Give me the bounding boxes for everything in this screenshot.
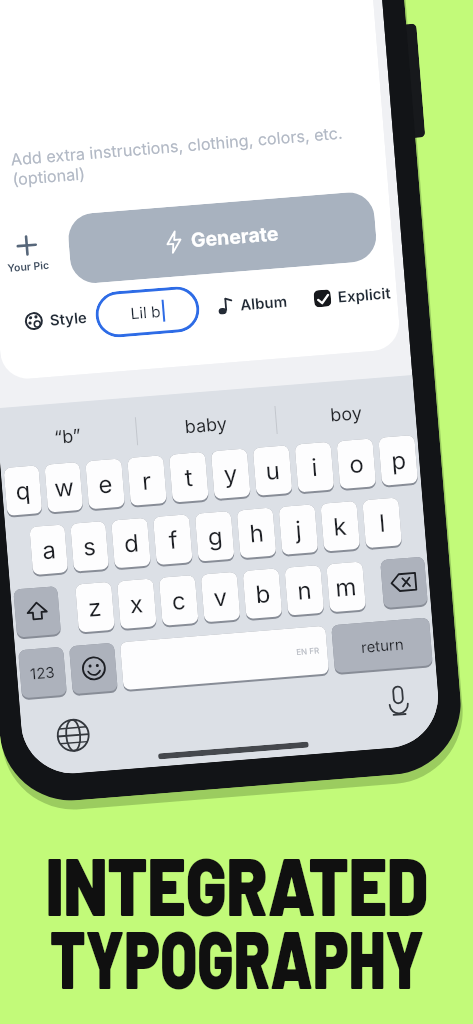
staticText: j [294,515,303,545]
button[interactable]: 123 [18,647,67,698]
button[interactable]: boy [276,398,416,431]
staticText: w [53,472,75,503]
button[interactable]: j [279,504,318,555]
button[interactable] [385,684,412,718]
staticText: a [41,535,57,565]
button[interactable]: s [70,521,109,572]
button[interactable] [69,643,118,694]
button[interactable]: baby [136,409,276,442]
button[interactable]: Lil b [94,285,201,339]
button[interactable]: i [295,442,334,492]
button[interactable]: q [3,465,42,516]
button[interactable]: k [320,501,360,551]
staticText: o [348,449,365,479]
staticText: h [248,518,266,548]
staticText: i [310,453,319,482]
button[interactable]: z [75,582,115,632]
button[interactable]: n [284,565,324,616]
button[interactable]: Explicit [313,283,391,307]
staticText: m [334,572,358,603]
button[interactable]: e [85,458,125,509]
button[interactable]: w [44,462,83,513]
staticText: (optional) [12,163,86,189]
staticText: baby [184,413,229,438]
staticText: TYPOGRAPHY [7,908,467,1024]
button[interactable]: g [195,511,234,562]
staticText: “b” [53,425,82,449]
staticText: Lil b [130,302,162,323]
button[interactable] [380,557,428,608]
staticText: f [168,525,179,555]
button[interactable]: y [211,448,251,499]
button[interactable]: c [159,575,198,626]
button[interactable]: return [331,617,433,673]
button[interactable]: l [362,497,402,548]
staticText: Album [239,292,288,313]
staticText: u [264,456,282,486]
button[interactable]: o [336,438,376,489]
button[interactable]: a [29,524,68,575]
button[interactable]: Album [217,292,288,315]
staticText: s [82,532,97,562]
staticText: y [223,459,239,489]
staticText: Explicit [337,283,391,306]
button[interactable]: Your Pic [0,232,64,276]
staticText: INTEGRATED [0,835,473,975]
button[interactable]: Generate [66,190,378,285]
button[interactable]: h [237,508,276,558]
staticText: g [207,522,224,552]
button[interactable]: v [201,572,240,622]
staticText: x [129,589,145,619]
button[interactable]: b [243,568,282,619]
button[interactable]: d [111,518,151,568]
staticText: return [360,634,405,656]
staticText: e [97,469,113,499]
staticText: c [171,586,187,616]
staticText: d [123,528,140,558]
button[interactable]: EN FR [120,626,329,690]
button[interactable]: x [117,578,157,629]
staticText: z [87,593,103,623]
button[interactable]: f [153,514,193,565]
button[interactable]: u [253,445,292,496]
staticText: v [212,582,229,612]
staticText: t [184,463,194,492]
button[interactable] [13,586,61,637]
staticText: p [390,446,407,476]
staticText: k [332,512,348,542]
staticText: Style [49,308,88,329]
button[interactable]: “b” [0,420,137,453]
staticText: Your Pic [7,259,50,275]
button[interactable]: r [127,455,167,506]
staticText: r [141,466,153,496]
staticText: 123 [29,663,56,682]
staticText: Add extra instructions, clothing, colors… [10,123,343,169]
staticText: boy [329,402,363,427]
staticText: Generate [190,221,279,252]
button[interactable]: t [169,452,209,502]
button[interactable] [55,717,91,754]
staticText: q [14,476,32,506]
staticText: l [378,509,386,538]
staticText: b [254,579,272,609]
staticText: EN FR [296,645,319,657]
staticText: n [296,576,313,606]
button[interactable]: p [378,435,418,486]
button[interactable]: m [326,561,366,612]
button[interactable]: Style [23,307,88,332]
